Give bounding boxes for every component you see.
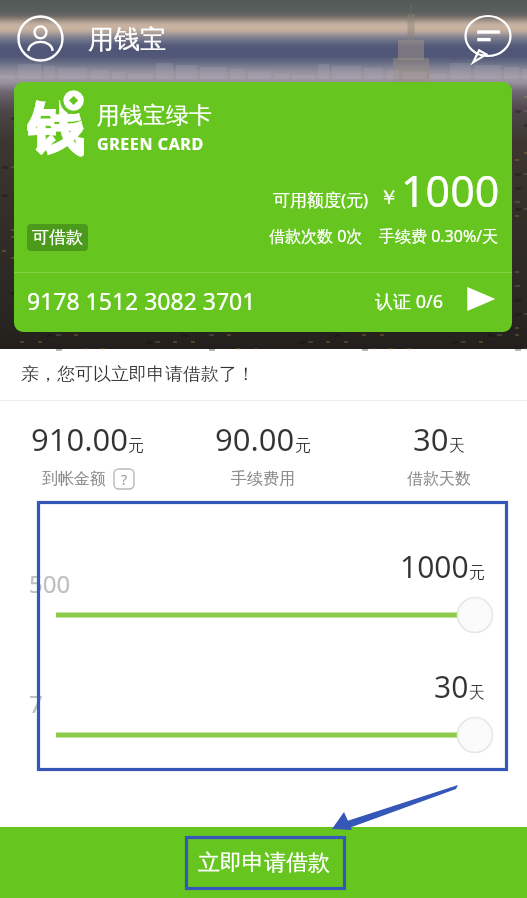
staticText: 30 [413, 418, 449, 460]
staticText: ￥ [379, 185, 399, 210]
staticText: 可借款 [32, 227, 83, 248]
staticText: 天 [469, 683, 485, 703]
staticText: 亲，您可以立即申请借款了！ [21, 363, 255, 386]
staticText: 9178 1512 3082 3701 [27, 285, 256, 316]
staticText: ? [121, 470, 128, 489]
staticText: 30 [434, 666, 469, 707]
staticText: 元 [469, 563, 485, 583]
staticText: 钱 [27, 94, 84, 162]
button[interactable]: Adjust 元 [0, 595, 527, 635]
staticText: 借款天数 [407, 469, 471, 489]
staticText: 手续费用 [231, 469, 295, 489]
staticText: GREEN CARD [97, 133, 204, 155]
button[interactable]: 立即申请借款 [0, 827, 527, 898]
button[interactable]: Profile [16, 14, 64, 62]
staticText: 1000 [401, 161, 500, 220]
staticText: 天 [449, 436, 465, 456]
button[interactable]: Adjust 天 [0, 715, 527, 755]
staticText: 910.00 [31, 418, 128, 460]
staticText: 手续费 0.30%/天 [379, 225, 499, 247]
staticText: 元 [128, 436, 144, 456]
button[interactable]: 可借款 [27, 224, 88, 251]
button[interactable]: 钱 [14, 82, 512, 332]
staticText: 到帐金额 [42, 469, 106, 489]
staticText: 500 [29, 567, 71, 600]
staticText: 借款次数 0次 [269, 225, 363, 247]
staticText: 可用额度(元) [273, 188, 369, 211]
staticText: 1000 [400, 546, 469, 587]
staticText: 用钱宝 [88, 23, 166, 56]
button[interactable]: Help [114, 469, 134, 489]
staticText: 90.00 [215, 418, 295, 460]
staticText: 元 [295, 436, 311, 456]
staticText: 用钱宝绿卡 [97, 101, 212, 130]
staticText: 立即申请借款 [198, 849, 330, 877]
button[interactable]: Messages [463, 13, 513, 63]
staticText: 认证 0/6 [375, 289, 443, 314]
staticText: 7 [29, 687, 43, 720]
